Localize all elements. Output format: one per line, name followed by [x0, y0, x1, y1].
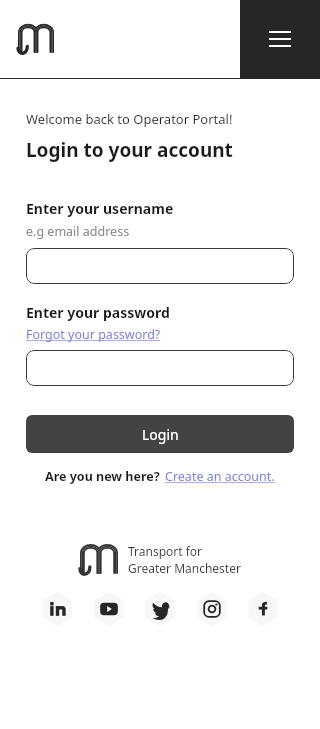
button[interactable]: Forgot your password? [26, 326, 161, 343]
staticText: Enter your password [26, 303, 170, 322]
staticText: Greater Manchester [128, 560, 241, 576]
staticText: Login [142, 425, 179, 444]
button[interactable]: Create an account. [165, 468, 275, 485]
staticText: Create an account. [165, 468, 275, 485]
button[interactable]: Open menu [240, 0, 320, 78]
button[interactable] [26, 350, 294, 386]
button[interactable]: Twitter [143, 592, 177, 626]
staticText: e.g email address [26, 223, 130, 240]
button[interactable]: Instagram [195, 592, 229, 626]
button[interactable]: Transport for Greater Manchester home [0, 0, 240, 78]
button[interactable]: YouTube [92, 592, 126, 626]
button[interactable]: Facebook [246, 592, 280, 626]
staticText: Transport for [128, 543, 203, 559]
staticText: Forgot your password? [26, 326, 161, 343]
staticText: Enter your username [26, 199, 174, 218]
button[interactable]: LinkedIn [40, 592, 74, 626]
staticText: Login to your account [26, 137, 233, 163]
staticText: Welcome back to Operator Portal! [26, 110, 233, 128]
button[interactable] [26, 248, 294, 284]
button[interactable]: Login [26, 415, 294, 453]
staticText: Are you new here? [45, 468, 160, 485]
